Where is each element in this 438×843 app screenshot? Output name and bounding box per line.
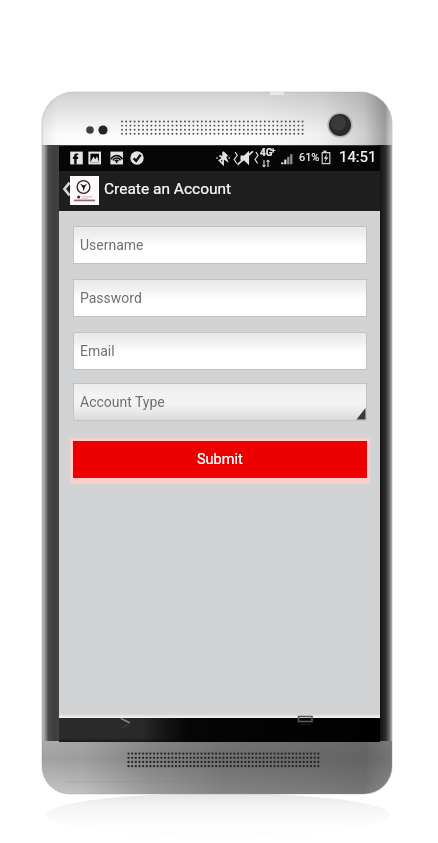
button[interactable]: Submit [73,441,367,478]
staticText: Username [80,237,144,253]
button[interactable]: Navigation bar [59,718,380,742]
button[interactable]: Account Type [73,383,367,421]
staticText: Submit [197,451,243,468]
staticText: 61% [299,151,320,164]
button[interactable]: Password [73,279,367,317]
button[interactable]: Username [73,226,367,264]
staticText: 4G [260,147,273,159]
button[interactable]: Email [73,332,367,370]
button[interactable]: App logo [70,176,99,205]
staticText: Email [80,343,115,359]
staticText: Password [80,290,142,306]
staticText: + [271,146,276,155]
staticText: 14:51 [339,148,377,166]
staticText: Account Type [80,394,165,410]
button[interactable]: Back [61,181,72,198]
staticText: Create an Account [104,180,232,198]
